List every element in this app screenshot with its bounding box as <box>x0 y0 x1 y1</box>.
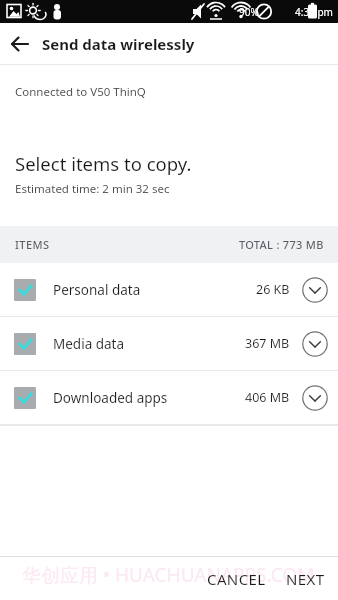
button[interactable]: Select Personal data <box>14 279 36 301</box>
staticText: Downloaded apps <box>53 389 245 407</box>
staticText: Personal data <box>53 281 256 299</box>
button[interactable]: Expand Personal data <box>300 275 330 305</box>
staticText: Connected to V50 ThinQ <box>15 84 146 100</box>
staticText: Select items to copy. <box>15 151 192 176</box>
staticText: Media data <box>53 335 245 353</box>
button[interactable]: Select Media data <box>14 333 36 355</box>
button[interactable]: Back <box>0 24 40 64</box>
button[interactable]: Expand Downloaded apps <box>300 383 330 413</box>
staticText: CANCEL <box>207 569 266 589</box>
button[interactable]: Select Downloaded apps <box>0 371 338 424</box>
staticText: NEXT <box>286 569 325 589</box>
staticText: TOTAL : 773 MB <box>239 237 324 252</box>
staticText: 90% <box>239 5 259 19</box>
button[interactable]: CANCEL <box>199 561 274 597</box>
button[interactable]: NEXT <box>278 561 333 597</box>
staticText: Send data wirelessly <box>42 34 195 54</box>
staticText: 华创应用 • HUACHUANAPPS.COM <box>22 562 315 588</box>
button[interactable]: Select Personal data <box>0 263 338 316</box>
staticText: Estimated time: 2 min 32 sec <box>15 181 170 197</box>
button[interactable]: Select Downloaded apps <box>14 387 36 409</box>
button[interactable]: Expand Media data <box>300 329 330 359</box>
staticText: ITEMS <box>15 237 50 252</box>
staticText: 406 MB <box>245 389 290 406</box>
staticText: 367 MB <box>245 335 290 352</box>
staticText: 26 KB <box>256 281 290 298</box>
staticText: 4:34 pm <box>295 5 333 19</box>
button[interactable]: Select Media data <box>0 317 338 370</box>
